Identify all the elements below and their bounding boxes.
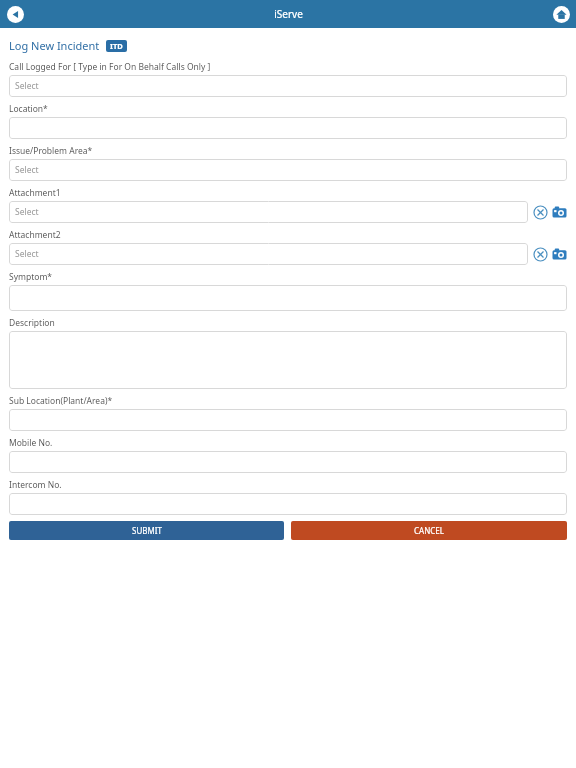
button[interactable]: Select (9, 243, 528, 265)
staticText: Symptom* (9, 271, 53, 283)
staticText: Sub Location(Plant/Area)* (9, 395, 113, 407)
staticText: iServe (274, 7, 303, 21)
staticText: Location* (9, 103, 48, 115)
staticText: Mobile No. (9, 437, 53, 449)
button[interactable] (9, 451, 567, 473)
staticText: Select (15, 206, 39, 218)
button[interactable]: CANCEL (291, 521, 567, 540)
button[interactable] (9, 409, 567, 431)
button[interactable]: Take photo (551, 246, 567, 262)
button[interactable]: Home (548, 1, 574, 27)
staticText: Description (9, 317, 55, 329)
button[interactable]: Select (9, 75, 567, 97)
button[interactable]: Select (9, 201, 528, 223)
button[interactable]: ITD (110, 41, 123, 51)
staticText: Attachment1 (9, 187, 61, 199)
staticText: ITD (110, 41, 123, 51)
button[interactable]: Clear attachment (532, 204, 548, 220)
staticText: Issue/Problem Area* (9, 145, 93, 157)
button[interactable]: Back (2, 1, 28, 27)
button[interactable] (9, 493, 567, 515)
staticText: Select (15, 80, 39, 92)
button[interactable]: Log New Incident (9, 38, 100, 53)
button[interactable]: Select (9, 159, 567, 181)
staticText: Intercom No. (9, 479, 62, 491)
button[interactable]: Take photo (551, 204, 567, 220)
staticText: CANCEL (414, 525, 444, 536)
staticText: SUBMIT (132, 525, 162, 536)
button[interactable]: SUBMIT (9, 521, 284, 540)
staticText: Select (15, 248, 39, 260)
button[interactable] (9, 117, 567, 139)
button[interactable] (9, 331, 567, 389)
button[interactable]: Clear attachment (532, 246, 548, 262)
staticText: Call Logged For [ Type in For On Behalf … (9, 61, 211, 73)
button[interactable] (9, 285, 567, 311)
staticText: Select (15, 164, 39, 176)
staticText: Attachment2 (9, 229, 61, 241)
